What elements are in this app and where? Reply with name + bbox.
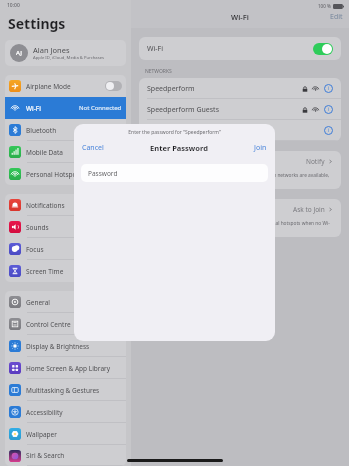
button[interactable]: Cancel [82,143,104,153]
staticText: Speedperform Guests [147,105,302,115]
staticText: 100 % [318,3,331,9]
button[interactable]: Speedperform [139,78,341,99]
staticText: Speedperform [147,84,302,94]
button[interactable]: Airplane Mode [5,75,126,97]
button[interactable]: Personal Hotspot [5,163,126,185]
staticText: Display & Brightness [26,342,122,351]
button[interactable]: Password [81,164,268,182]
staticText: Home Screen & App Library [26,364,122,373]
button[interactable]: Display & Brightness [5,335,126,357]
staticText: Join [254,143,267,153]
staticText: Not Connected [79,104,122,112]
button[interactable]: Multitasking & Gestures [5,379,126,401]
staticText: Wi-Fi [26,104,79,113]
staticText: Siri & Search [26,451,122,460]
staticText: Ask to Join [293,205,325,214]
staticText: Auto-Join Hotspot [147,205,293,215]
button[interactable]: Accessibility [5,401,126,423]
staticText: Password [88,169,118,178]
button[interactable]: Mobile Data [5,141,126,163]
staticText: Alan Jones [33,45,70,55]
button[interactable]: Other [139,120,341,141]
staticText: Bluetooth [26,126,122,135]
staticText: i [328,106,330,113]
staticText: i [328,127,330,134]
button[interactable]: Wi-Fi on [313,43,333,55]
staticText: Focus [26,245,122,254]
staticText: Other [147,126,324,136]
staticText: Settings [8,14,66,33]
button[interactable]: AJ [5,40,126,66]
button[interactable]: Home Screen & App Library [5,357,126,379]
staticText: Airplane Mode [26,82,105,91]
button[interactable]: Edit [330,12,343,22]
staticText: General [26,298,122,307]
button[interactable]: Wallpaper [5,423,126,445]
staticText: i [328,85,330,92]
button[interactable]: Airplane Mode toggle [105,81,122,91]
staticText: 10:00 [7,2,20,9]
button[interactable]: General [5,291,126,313]
staticText: Screen Time [26,267,122,276]
button[interactable]: Wi-Fi [5,97,126,119]
staticText: Allow this device to automatically disco… [147,220,333,232]
staticText: Ask to Join Networks [147,157,306,167]
button[interactable]: Wi-Fi [139,37,341,60]
button[interactable]: More info about Other [324,126,333,135]
staticText: Apple ID, iCloud, Media & Purchases [33,55,105,61]
staticText: Mobile Data [26,148,122,157]
staticText: Control Centre [26,320,122,329]
button[interactable]: Screen Time [5,260,126,282]
staticText: Known networks will be joined automatica… [147,172,333,184]
staticText: Enter the password for “Speedperform” [74,129,275,136]
button[interactable]: Notifications [5,194,126,216]
staticText: AJ [16,49,22,57]
staticText: Sounds [26,223,122,232]
staticText: Notify [306,157,325,166]
staticText: Cancel [82,143,104,153]
staticText: NETWORKS [145,68,172,75]
button[interactable]: Siri & Search [5,445,126,466]
staticText: Accessibility [26,408,122,417]
staticText: Multitasking & Gestures [26,386,122,395]
button[interactable]: Focus [5,238,126,260]
button[interactable]: Auto-Join Hotspot [139,199,341,220]
button[interactable]: More info about Speedperform [324,84,333,93]
button[interactable]: Sounds [5,216,126,238]
staticText: Wi-Fi [231,12,249,22]
staticText: Enter Password [104,143,254,153]
staticText: Personal Hotspot [26,170,122,179]
staticText: Edit [330,12,343,22]
staticText: Wi-Fi [147,44,313,54]
button[interactable]: Join [254,143,267,153]
button[interactable]: More info about Speedperform Guests [324,105,333,114]
button[interactable]: Bluetooth [5,119,126,141]
button[interactable]: Speedperform Guests [139,99,341,120]
staticText: Wallpaper [26,430,122,439]
button[interactable]: Control Centre [5,313,126,335]
staticText: Notifications [26,201,122,210]
button[interactable]: Ask to Join Networks [139,151,341,172]
